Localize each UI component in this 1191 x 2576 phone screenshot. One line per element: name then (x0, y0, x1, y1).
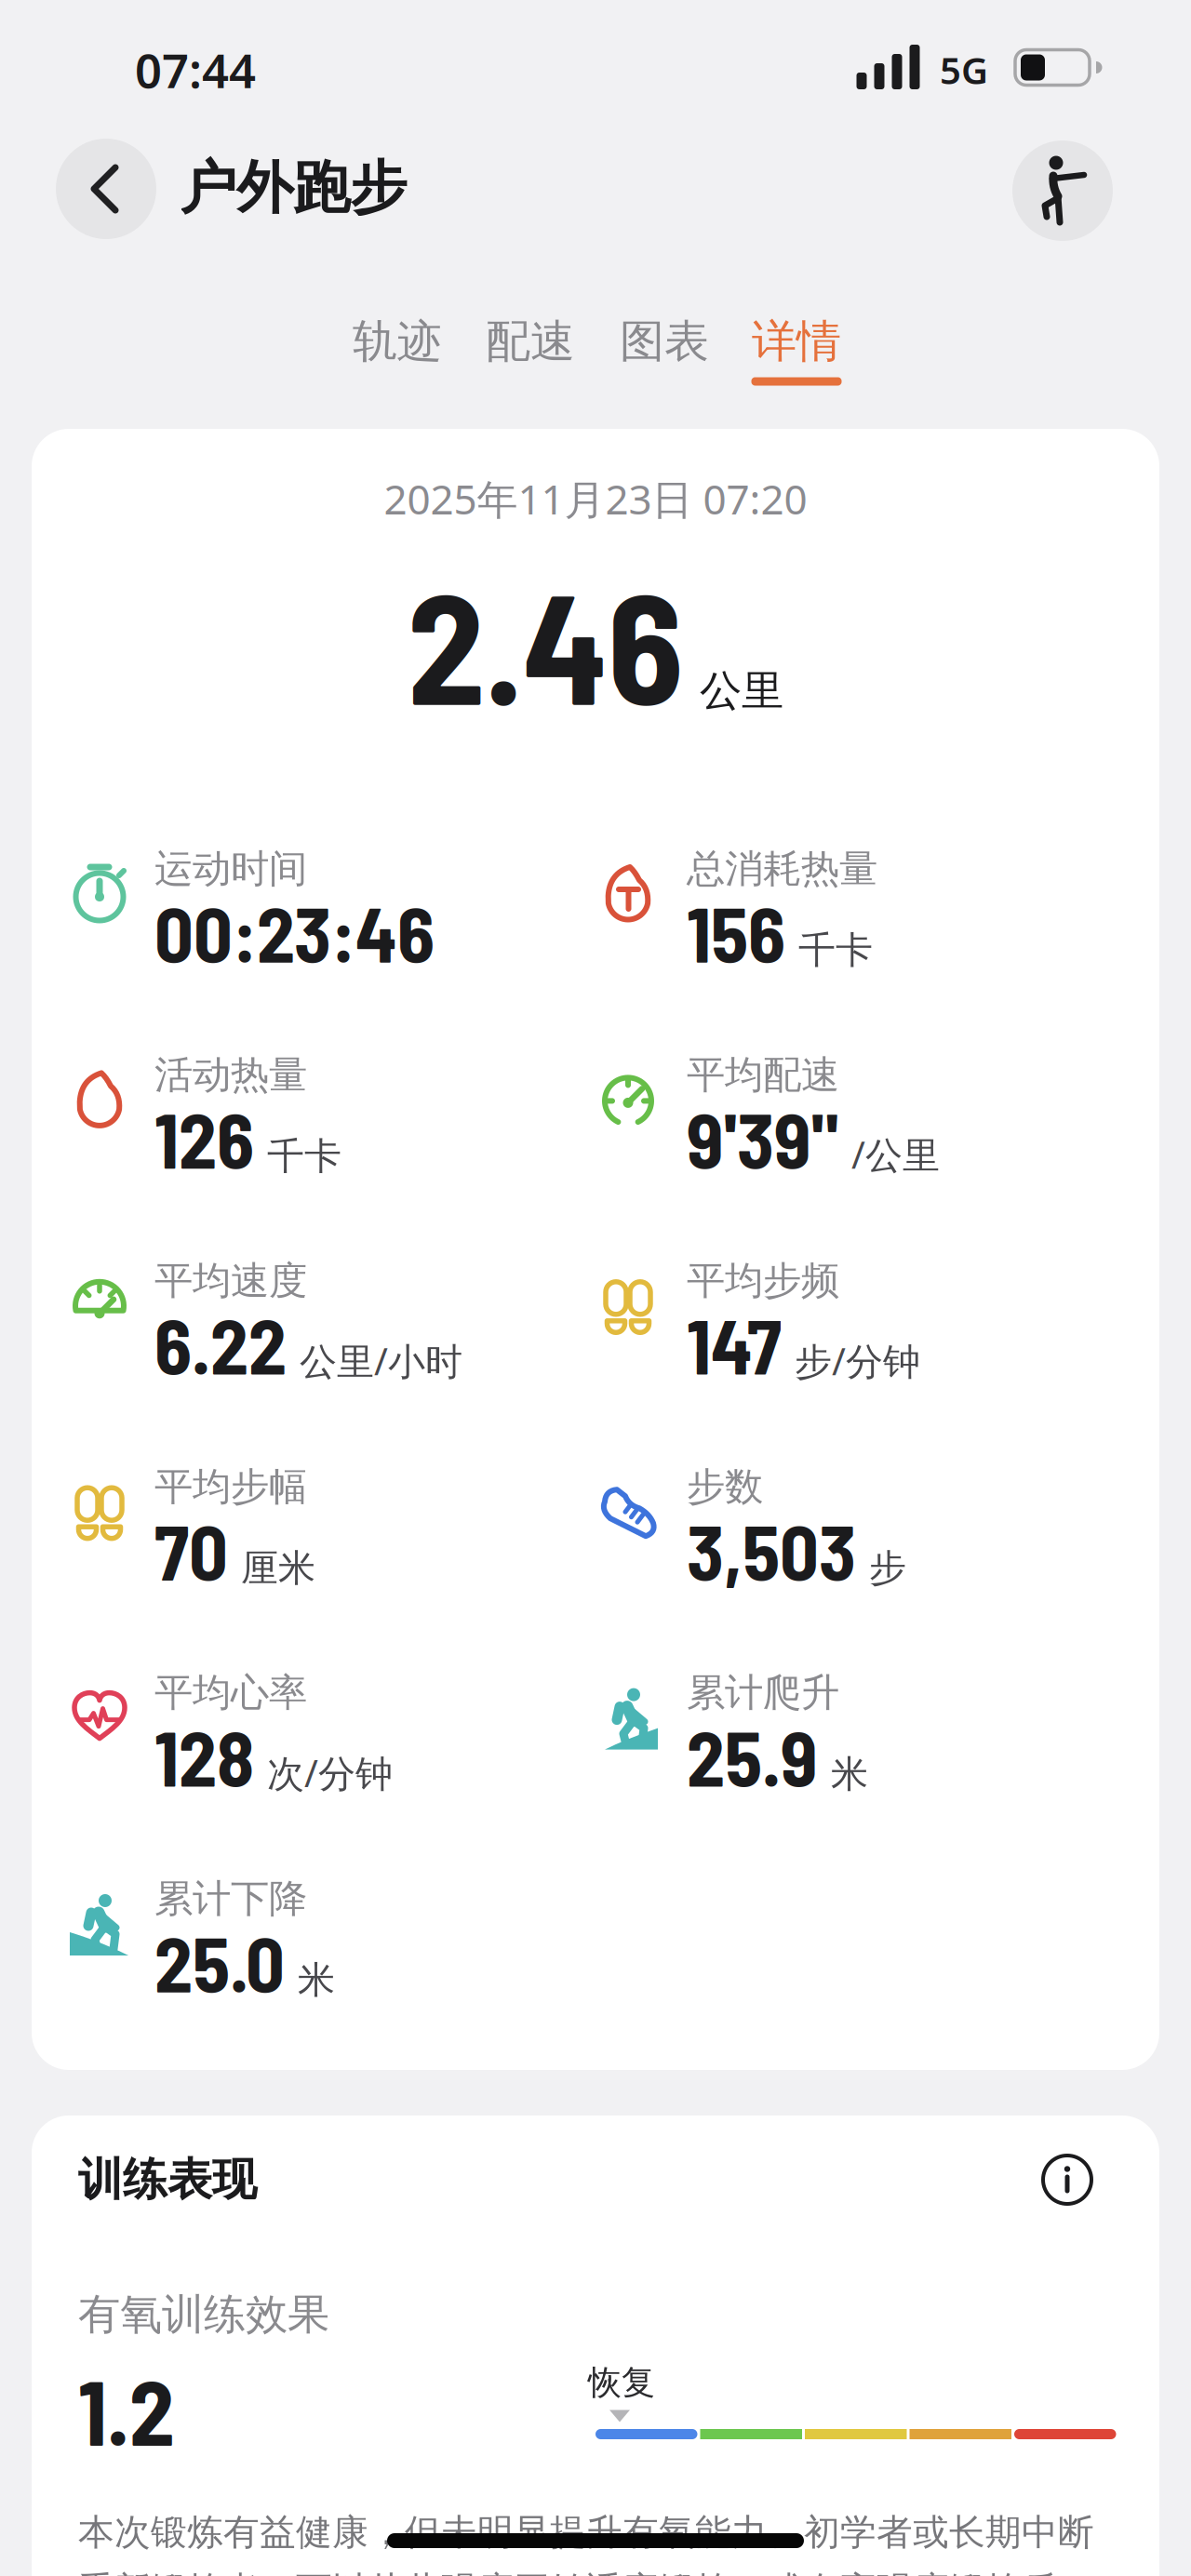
staticText: 恢复 (588, 2362, 655, 2403)
staticText: 重新锻炼者，可以从此强度开始适应锻炼，或在高强度锻炼后 (78, 2568, 1058, 2576)
staticText: 3,503 (687, 1504, 856, 1596)
staticText: 平均速度 (154, 1257, 307, 1304)
staticText: 25.9 (687, 1710, 818, 1802)
staticText: 5G (940, 45, 988, 94)
staticText: 07:44 (135, 39, 256, 101)
staticText: 1.2 (78, 2355, 175, 2464)
staticText: 详情 (752, 314, 841, 369)
button[interactable]: 配速 (461, 304, 600, 379)
staticText: 米 (831, 1751, 868, 1797)
staticText: 千卡 (267, 1133, 341, 1179)
staticText: 6.22 (154, 1298, 287, 1390)
staticText: 轨迹 (353, 314, 442, 369)
staticText: 步数 (687, 1463, 763, 1510)
staticText: 总消耗热量 (687, 845, 877, 893)
staticText: 步 (869, 1545, 906, 1591)
staticText: 活动热量 (154, 1051, 307, 1098)
staticText: 126 (154, 1092, 254, 1184)
button[interactable]: Workout animation (1012, 140, 1113, 241)
staticText: 配速 (486, 314, 575, 369)
staticText: 训练表现 (78, 2152, 257, 2207)
staticText: 平均配速 (687, 1051, 839, 1098)
staticText: 128 (154, 1710, 254, 1802)
staticText: 156 (687, 886, 785, 978)
button[interactable]: Back (56, 139, 156, 239)
staticText: 9'39" (687, 1092, 838, 1184)
staticText: 米 (298, 1957, 335, 2003)
staticText: 累计爬升 (687, 1669, 839, 1716)
staticText: 步/分钟 (795, 1336, 920, 1385)
staticText: 平均步频 (687, 1257, 839, 1304)
staticText: 图表 (620, 314, 709, 369)
staticText: 公里/小时 (300, 1336, 462, 1385)
button[interactable]: About training performance (1040, 2153, 1094, 2207)
staticText: 2.46 (408, 550, 683, 736)
staticText: 户外跑步 (180, 153, 407, 223)
staticText: 00:23:46 (154, 886, 435, 978)
staticText: 累计下降 (154, 1875, 307, 1922)
staticText: 有氧训练效果 (78, 2289, 329, 2341)
staticText: 运动时间 (154, 845, 307, 893)
staticText: /公里 (851, 1129, 940, 1179)
button[interactable]: 图表 (595, 304, 734, 379)
staticText: 25.0 (154, 1916, 285, 2008)
staticText: 70 (154, 1504, 228, 1596)
staticText: 平均步幅 (154, 1463, 307, 1510)
button[interactable]: 轨迹 (328, 304, 467, 379)
staticText: 公里 (700, 665, 783, 717)
staticText: 147 (687, 1298, 782, 1390)
staticText: 次/分钟 (267, 1748, 393, 1797)
staticText: 平均心率 (154, 1669, 307, 1716)
staticText: 厘米 (241, 1545, 315, 1591)
staticText: 2025年11月23日 07:20 (384, 471, 807, 526)
staticText: 千卡 (798, 927, 873, 973)
button[interactable]: 详情 (727, 304, 866, 379)
staticText: 本次锻炼有益健康，但未明显提升有氧能力。初学者或长期中断 (78, 2510, 1094, 2554)
